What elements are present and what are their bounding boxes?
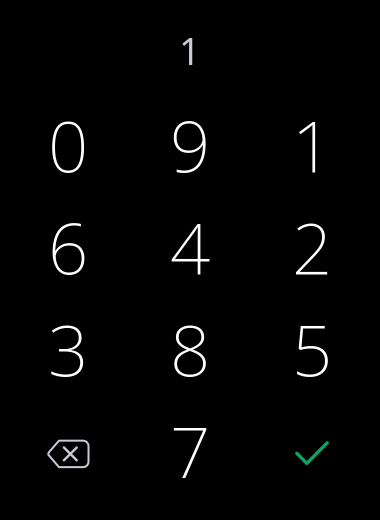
- button[interactable]: 0: [7, 94, 129, 196]
- button[interactable]: 8: [129, 298, 251, 400]
- button[interactable]: 4: [129, 196, 251, 298]
- staticText: 2: [292, 200, 332, 294]
- staticText: 5: [292, 302, 332, 396]
- button[interactable]: Delete: [7, 399, 129, 501]
- button[interactable]: 1: [251, 94, 373, 196]
- staticText: 1: [179, 26, 200, 75]
- staticText: 7: [170, 404, 210, 497]
- staticText: 3: [48, 302, 88, 396]
- button[interactable]: Confirm: [251, 399, 373, 501]
- button[interactable]: 5: [251, 298, 373, 400]
- staticText: 4: [170, 200, 210, 294]
- staticText: 0: [48, 98, 88, 192]
- staticText: 9: [170, 98, 210, 192]
- button[interactable]: 2: [251, 196, 373, 298]
- staticText: 6: [48, 200, 88, 294]
- staticText: 1: [292, 98, 332, 192]
- button[interactable]: 7: [129, 399, 251, 501]
- button[interactable]: 6: [7, 196, 129, 298]
- staticText: 8: [170, 302, 210, 396]
- button[interactable]: 3: [7, 298, 129, 400]
- button[interactable]: 9: [129, 94, 251, 196]
